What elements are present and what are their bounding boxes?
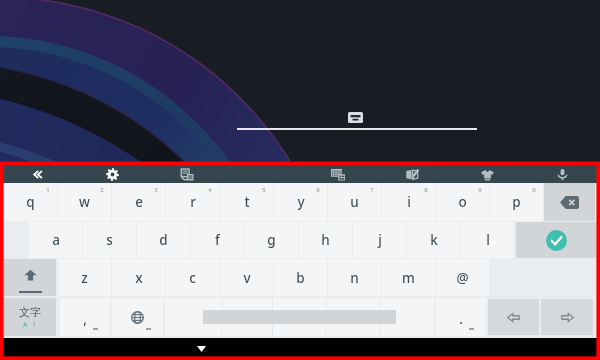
button[interactable]: p (490, 183, 543, 221)
staticText: s (106, 231, 113, 249)
button[interactable]: Move cursor left (488, 299, 539, 335)
button[interactable]: d (137, 222, 190, 258)
button[interactable]: v (220, 259, 273, 296)
staticText: e (135, 193, 143, 211)
button[interactable]: k (407, 222, 460, 258)
button[interactable]: Enter (516, 222, 596, 258)
button[interactable]: q (4, 183, 57, 221)
staticText: 7 (370, 186, 374, 194)
button[interactable]: Switch input mode (4, 298, 56, 336)
button[interactable]: t (220, 183, 273, 221)
staticText: 3 (154, 186, 158, 194)
staticText: 9 (478, 186, 482, 194)
button[interactable]: Shift (4, 259, 56, 296)
staticText: 0 (532, 186, 536, 194)
button[interactable]: z (58, 259, 111, 296)
button[interactable]: g (245, 222, 298, 258)
staticText: k (430, 231, 438, 249)
button[interactable]: Show keyboard (348, 112, 363, 123)
staticText: u (350, 193, 359, 211)
staticText: 1 (46, 186, 50, 194)
button[interactable]: , (60, 298, 110, 336)
staticText: 4 (208, 186, 212, 194)
staticText: c (189, 269, 196, 287)
button[interactable]: Keyboard settings (75, 165, 150, 183)
button[interactable]: j (353, 222, 406, 258)
staticText: d (159, 231, 168, 249)
button[interactable]: . (436, 298, 486, 336)
staticText: x (135, 269, 143, 287)
button[interactable]: h (299, 222, 352, 258)
button[interactable]: x (112, 259, 165, 296)
staticText: @ (456, 269, 469, 287)
staticText: , (83, 310, 87, 328)
staticText: w (79, 193, 90, 211)
staticText: b (296, 269, 305, 287)
staticText: 1 (32, 320, 37, 330)
button[interactable]: One handed keyboard (300, 165, 375, 183)
staticText: t (244, 193, 250, 211)
staticText: a (52, 231, 60, 249)
button[interactable]: Space (165, 298, 434, 336)
button[interactable]: a (29, 222, 82, 258)
staticText: 文字 (19, 305, 41, 319)
button[interactable]: o (436, 183, 489, 221)
button[interactable]: Themes (450, 165, 525, 183)
button[interactable]: Collapse toolbar (0, 165, 75, 183)
button[interactable]: l (461, 222, 514, 258)
staticText: l (486, 231, 490, 249)
button[interactable]: c (166, 259, 219, 296)
staticText: v (243, 269, 251, 287)
button[interactable]: m (382, 259, 435, 296)
button[interactable]: Handwriting (375, 165, 450, 183)
button[interactable]: y (274, 183, 327, 221)
button[interactable]: Clipboard (150, 165, 225, 183)
staticText: q (26, 193, 35, 211)
staticText: z (81, 269, 88, 287)
staticText: o (458, 193, 467, 211)
button[interactable]: s (83, 222, 136, 258)
button[interactable]: f (191, 222, 244, 258)
staticText: 6 (316, 186, 320, 194)
staticText: A (23, 320, 28, 330)
staticText: . (459, 310, 463, 328)
button[interactable]: r (166, 183, 219, 221)
button[interactable]: Voice input (525, 165, 600, 183)
button[interactable]: Move cursor right (541, 299, 593, 335)
staticText: y (297, 193, 305, 211)
staticText: 5 (262, 186, 266, 194)
button[interactable]: Hide keyboard (194, 342, 208, 356)
staticText: h (321, 231, 330, 249)
staticText: 8 (424, 186, 428, 194)
button[interactable]: n (328, 259, 381, 296)
button[interactable]: b (274, 259, 327, 296)
button[interactable]: e (112, 183, 165, 221)
staticText: n (350, 269, 359, 287)
staticText: f (215, 231, 220, 249)
button[interactable]: Backspace (544, 183, 595, 221)
staticText: j (378, 231, 382, 249)
button[interactable]: i (382, 183, 435, 221)
button[interactable]: @ (436, 259, 489, 296)
staticText: 2 (100, 186, 104, 194)
button[interactable]: Change keyboard language (112, 298, 163, 336)
button[interactable]: u (328, 183, 381, 221)
staticText: r (190, 193, 196, 211)
staticText: m (402, 269, 415, 287)
staticText: i (407, 193, 411, 211)
staticText: p (512, 193, 521, 211)
button[interactable]: w (58, 183, 111, 221)
staticText: g (267, 231, 276, 249)
